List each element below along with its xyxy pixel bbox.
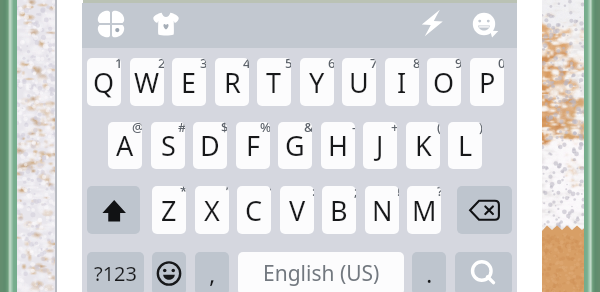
staticText: Q bbox=[93, 64, 115, 101]
staticText: A bbox=[116, 127, 134, 164]
staticText: - bbox=[352, 122, 355, 136]
staticText: 6 bbox=[328, 58, 334, 72]
staticText: I bbox=[397, 64, 407, 101]
staticText: S bbox=[161, 127, 176, 164]
staticText: 9 bbox=[455, 58, 461, 72]
staticText: M bbox=[412, 192, 437, 229]
staticText: $ bbox=[221, 122, 227, 136]
staticText: English (US) bbox=[263, 259, 380, 288]
staticText: + bbox=[391, 122, 397, 136]
staticText: L bbox=[458, 127, 473, 164]
staticText: % bbox=[260, 122, 270, 136]
staticText: 2 bbox=[158, 58, 164, 72]
button[interactable]: L bbox=[448, 122, 482, 169]
button[interactable]: M bbox=[407, 186, 441, 234]
staticText: J bbox=[376, 127, 384, 164]
staticText: 7 bbox=[370, 58, 376, 72]
staticText: R bbox=[224, 64, 241, 101]
staticText: 1 bbox=[115, 58, 121, 72]
staticText: ” bbox=[226, 186, 229, 200]
staticText: 4 bbox=[243, 58, 249, 72]
staticText: H bbox=[328, 127, 349, 164]
button[interactable]: X bbox=[195, 186, 229, 234]
button[interactable]: A bbox=[108, 122, 142, 169]
staticText: Y bbox=[309, 64, 325, 101]
staticText: ) bbox=[479, 122, 482, 136]
button[interactable]: Q bbox=[87, 58, 121, 106]
staticText: 0 bbox=[498, 58, 504, 72]
button[interactable]: N bbox=[365, 186, 399, 234]
button[interactable]: K bbox=[406, 122, 440, 169]
button[interactable]: Emoji panel bbox=[470, 10, 498, 38]
staticText: V bbox=[289, 192, 306, 229]
button[interactable]: P bbox=[470, 58, 504, 106]
staticText: C bbox=[245, 192, 263, 229]
staticText: ?123 bbox=[94, 260, 137, 287]
button[interactable]: W bbox=[130, 58, 164, 106]
staticText: 3 bbox=[200, 58, 206, 72]
button[interactable]: B bbox=[322, 186, 356, 234]
button[interactable]: O bbox=[427, 58, 461, 106]
button[interactable]: V bbox=[280, 186, 314, 234]
staticText: 5 bbox=[285, 58, 291, 72]
staticText: W bbox=[134, 64, 160, 101]
staticText: O bbox=[433, 64, 455, 101]
button[interactable]: C bbox=[237, 186, 271, 234]
staticText: X bbox=[204, 192, 220, 229]
staticText: T bbox=[266, 64, 282, 101]
button[interactable]: ?123 bbox=[87, 252, 144, 292]
staticText: G bbox=[285, 127, 305, 164]
button[interactable]: Themes bbox=[97, 10, 125, 38]
staticText: ! bbox=[397, 186, 399, 200]
staticText: D bbox=[200, 127, 220, 164]
button[interactable]: J bbox=[363, 122, 397, 169]
button[interactable]: Shift bbox=[87, 186, 140, 234]
staticText: 8 bbox=[413, 58, 419, 72]
button[interactable]: E bbox=[172, 58, 206, 106]
button[interactable]: R bbox=[215, 58, 249, 106]
button[interactable]: . bbox=[412, 252, 446, 292]
button[interactable]: H bbox=[321, 122, 355, 169]
staticText: ? bbox=[437, 186, 441, 200]
button[interactable]: Backspace bbox=[457, 186, 512, 234]
button[interactable]: , bbox=[195, 252, 229, 292]
button[interactable]: T bbox=[257, 58, 291, 106]
button[interactable]: G bbox=[278, 122, 312, 169]
staticText: K bbox=[415, 127, 432, 164]
button[interactable]: Emoji bbox=[152, 252, 186, 292]
staticText: E bbox=[181, 64, 197, 101]
staticText: N bbox=[372, 192, 393, 229]
button[interactable]: S bbox=[151, 122, 185, 169]
button[interactable]: Y bbox=[300, 58, 334, 106]
button[interactable]: F bbox=[236, 122, 270, 169]
staticText: Z bbox=[161, 192, 177, 229]
staticText: F bbox=[246, 127, 261, 164]
staticText: U bbox=[349, 64, 369, 101]
button[interactable]: Search bbox=[455, 252, 512, 292]
staticText: : bbox=[312, 186, 314, 200]
staticText: ; bbox=[354, 186, 356, 200]
button[interactable]: Quick actions bbox=[417, 8, 447, 38]
button[interactable]: U bbox=[342, 58, 376, 106]
staticText: * bbox=[180, 186, 186, 200]
staticText: ( bbox=[437, 122, 440, 136]
button[interactable]: English (US) bbox=[238, 252, 404, 292]
staticText: # bbox=[178, 122, 185, 136]
button[interactable]: Z bbox=[152, 186, 186, 234]
button[interactable]: I bbox=[385, 58, 419, 106]
staticText: @ bbox=[132, 122, 142, 136]
staticText: , bbox=[209, 257, 216, 290]
staticText: . bbox=[426, 257, 433, 290]
staticText: & bbox=[304, 122, 312, 136]
staticText: ' bbox=[269, 186, 271, 200]
staticText: B bbox=[330, 192, 348, 229]
button[interactable]: Stickers bbox=[152, 10, 180, 38]
staticText: P bbox=[479, 64, 496, 101]
button[interactable]: D bbox=[193, 122, 227, 169]
